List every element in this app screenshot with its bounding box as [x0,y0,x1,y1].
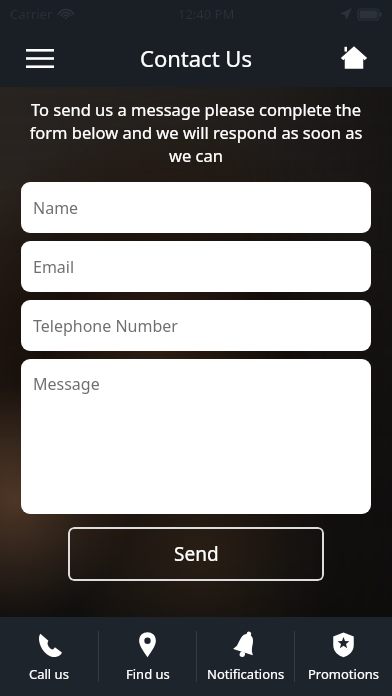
button[interactable]: Notifications [197,617,294,696]
staticText: Find us [126,665,170,683]
staticText: Send [174,541,219,567]
staticText: Name [33,197,79,219]
staticText: Notifications [207,665,285,683]
staticText: To send us a message please complete the… [24,98,368,167]
button[interactable]: Menu [14,32,66,84]
staticText: Email [33,256,75,278]
button[interactable]: Message [21,359,371,514]
button[interactable]: Email [21,241,371,292]
staticText: Call us [29,665,69,683]
staticText: Telephone Number [33,315,178,337]
staticText: Promotions [308,665,380,683]
button[interactable]: Send [68,527,324,581]
button[interactable]: Call us [0,617,98,696]
button[interactable]: Name [21,182,371,233]
button[interactable]: Find us [99,617,196,696]
button[interactable]: Telephone Number [21,300,371,351]
staticText: Contact Us [140,43,252,73]
button[interactable]: Promotions [295,617,392,696]
staticText: Carrier [10,5,53,23]
staticText: 12:40 PM [178,5,235,23]
staticText: Message [33,373,100,395]
button[interactable]: Home [328,32,380,84]
